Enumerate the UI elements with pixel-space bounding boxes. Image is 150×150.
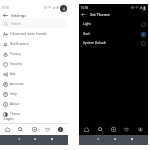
- staticText: 10:05: [81, 6, 89, 10]
- staticText: Security: [10, 62, 22, 66]
- staticText: 10:05: [2, 6, 10, 10]
- button[interactable]: New post: [108, 124, 119, 135]
- staticText: Settings: [11, 13, 27, 18]
- button[interactable]: Security: [0, 59, 68, 69]
- button[interactable]: Theme: [0, 109, 68, 119]
- staticText: Set Theme: [90, 12, 110, 17]
- button[interactable]: Home: [81, 124, 92, 135]
- button[interactable]: Privacy: [0, 49, 68, 59]
- button[interactable]: Search: [1, 19, 67, 28]
- button[interactable]: Back: [1, 11, 10, 20]
- button[interactable]: About: [0, 99, 68, 109]
- button[interactable]: Home: [31, 135, 39, 143]
- staticText: Logins: [4, 117, 14, 121]
- button[interactable]: Help: [0, 89, 68, 99]
- button[interactable]: Accounts: [0, 79, 68, 89]
- button[interactable]: Back: [79, 10, 88, 19]
- button[interactable]: New post: [29, 124, 40, 135]
- button[interactable]: Follow and invite friends: [0, 29, 68, 39]
- button[interactable]: Search: [15, 124, 26, 135]
- button[interactable]: Profile: [55, 124, 66, 135]
- button[interactable]: Activity: [121, 124, 132, 135]
- button[interactable]: Profile: [60, 5, 67, 12]
- staticText: Ads: [10, 72, 16, 76]
- staticText: System Default: [83, 41, 106, 45]
- button[interactable]: Search: [95, 124, 106, 135]
- button[interactable]: Back: [94, 135, 102, 143]
- button[interactable]: Recent apps: [128, 135, 136, 143]
- button[interactable]: Notifications: [0, 39, 68, 49]
- staticText: Privacy: [10, 52, 21, 56]
- button[interactable]: Ads: [0, 69, 68, 79]
- staticText: Search: [11, 22, 21, 26]
- staticText: Follow and invite friends: [10, 32, 47, 36]
- button[interactable]: Profile: [135, 124, 146, 135]
- button[interactable]: Home: [111, 135, 119, 143]
- staticText: Dark: [83, 32, 91, 36]
- staticText: Light: [83, 22, 91, 26]
- staticText: About: [10, 102, 20, 106]
- button[interactable]: Back: [15, 135, 23, 143]
- button[interactable]: Activity: [42, 124, 53, 135]
- button[interactable]: Light: [79, 19, 148, 29]
- button[interactable]: Dark: [79, 29, 148, 39]
- button[interactable]: System Default: [79, 38, 148, 48]
- staticText: Theme: [10, 112, 21, 116]
- button[interactable]: Recent apps: [48, 135, 56, 143]
- staticText: Notifications: [10, 42, 29, 46]
- button[interactable]: Home: [2, 124, 13, 135]
- staticText: Accounts: [10, 82, 24, 86]
- staticText: Help: [10, 92, 17, 96]
